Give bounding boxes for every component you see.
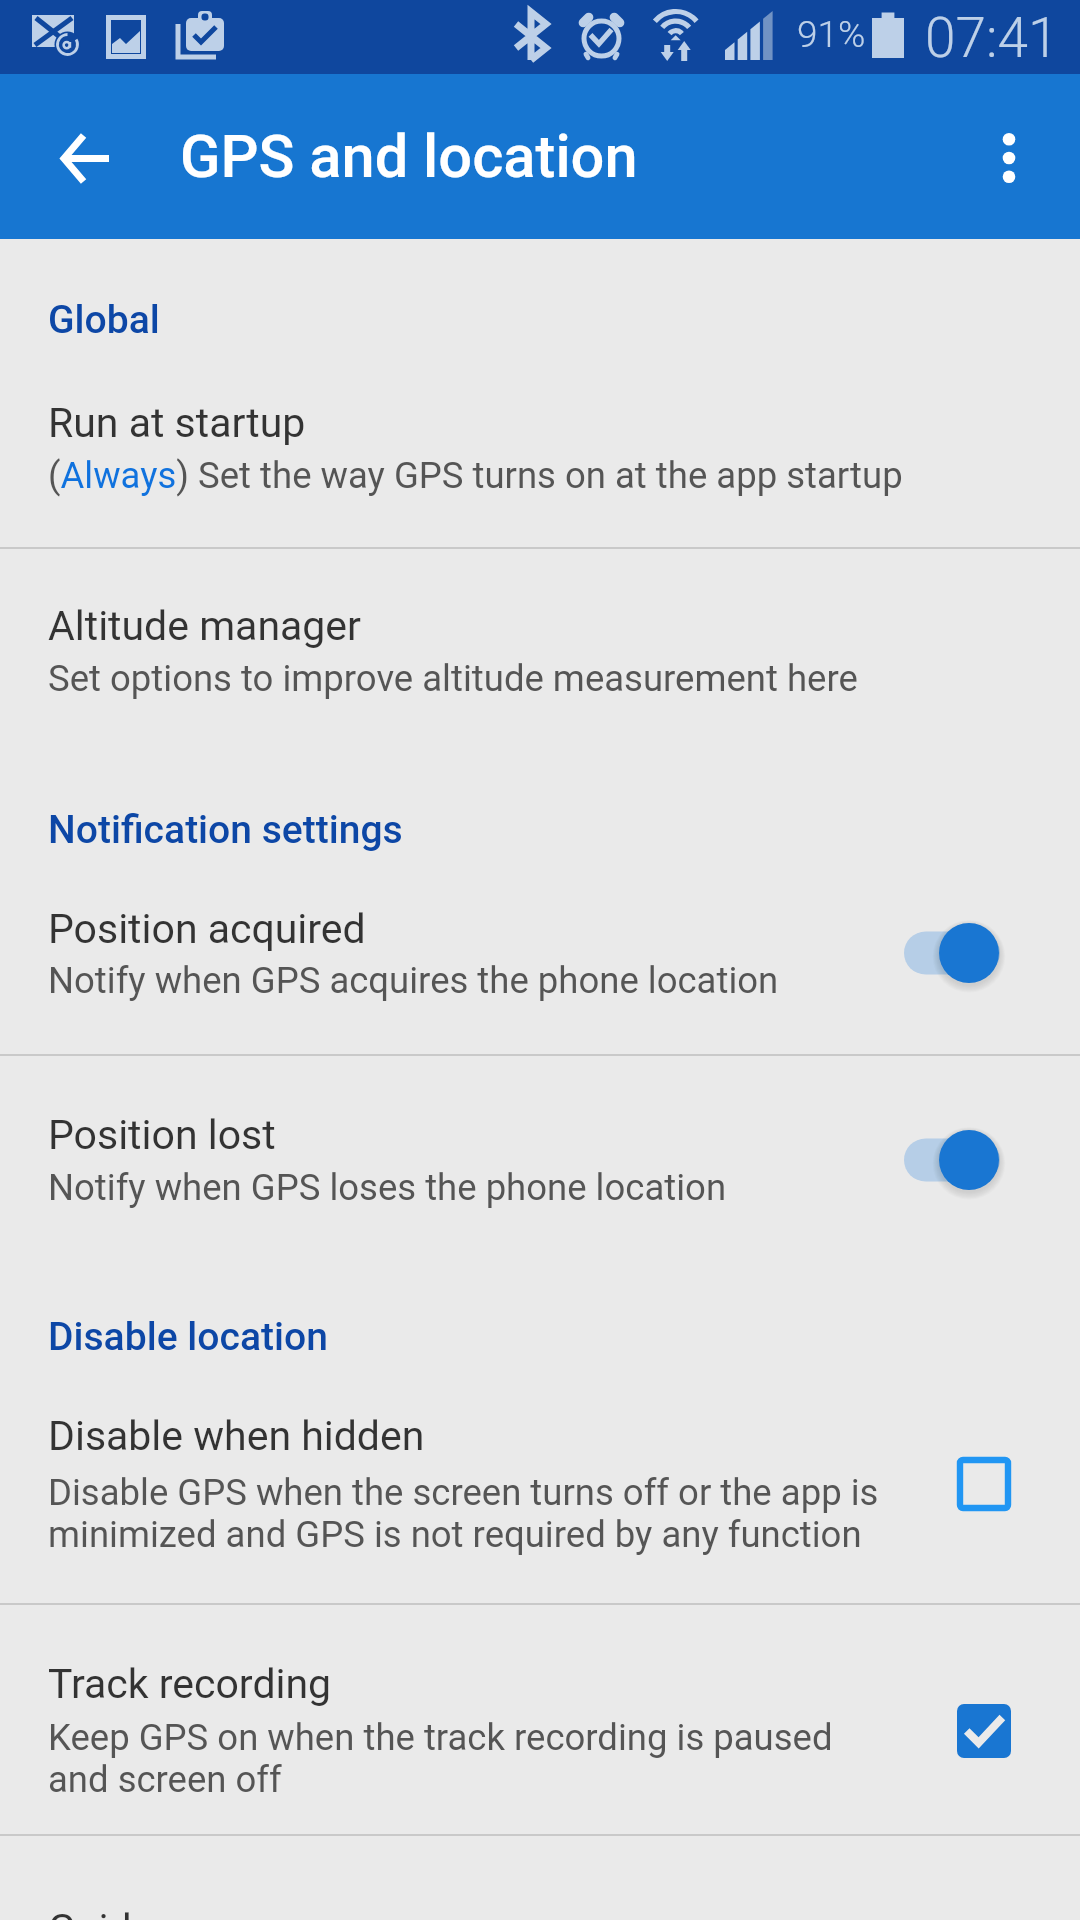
staticText: Notification settings <box>48 807 403 853</box>
staticText: Set options to improve altitude measurem… <box>48 657 858 700</box>
staticText: Disable GPS when the screen turns off or… <box>48 1471 880 1556</box>
button[interactable]: Checkbox, checked <box>902 1681 1080 1781</box>
staticText: Disable location <box>48 1314 328 1360</box>
button[interactable]: Position acquired <box>0 903 1080 1003</box>
staticText: 07:41 <box>925 6 1059 70</box>
button[interactable]: Run at startup <box>0 399 1080 497</box>
staticText: Altitude manager <box>48 602 362 650</box>
staticText: Global <box>48 297 160 343</box>
button[interactable]: Altitude manager <box>0 602 1080 700</box>
staticText: Guidance <box>48 1905 220 1920</box>
button[interactable]: Position lost <box>0 1110 1080 1210</box>
staticText: GPS and location <box>180 122 638 192</box>
staticText: Keep GPS on when the track recording is … <box>48 1716 880 1801</box>
staticText: Disable when hidden <box>48 1412 425 1460</box>
button[interactable]: Disable when hidden <box>0 1412 1080 1556</box>
staticText: Track recording <box>48 1660 332 1708</box>
staticText: (Always) Set the way GPS turns on at the… <box>48 454 903 497</box>
button[interactable]: Checkbox, unchecked <box>902 1434 1080 1534</box>
button[interactable]: Guidance <box>0 1905 1080 1920</box>
button[interactable]: Track recording <box>0 1660 1080 1801</box>
button[interactable]: More options <box>944 92 1074 222</box>
staticText: Notify when GPS loses the phone location <box>48 1166 727 1209</box>
staticText: Run at startup <box>48 399 306 447</box>
staticText: Notify when GPS acquires the phone locat… <box>48 959 779 1002</box>
button[interactable]: Notification toggle, on <box>902 903 1080 1003</box>
staticText: Position acquired <box>48 905 366 953</box>
staticText: Position lost <box>48 1111 276 1159</box>
button[interactable]: Navigate up <box>13 85 157 229</box>
staticText: 91% <box>797 13 866 56</box>
button[interactable]: Notification toggle, on <box>902 1110 1080 1210</box>
